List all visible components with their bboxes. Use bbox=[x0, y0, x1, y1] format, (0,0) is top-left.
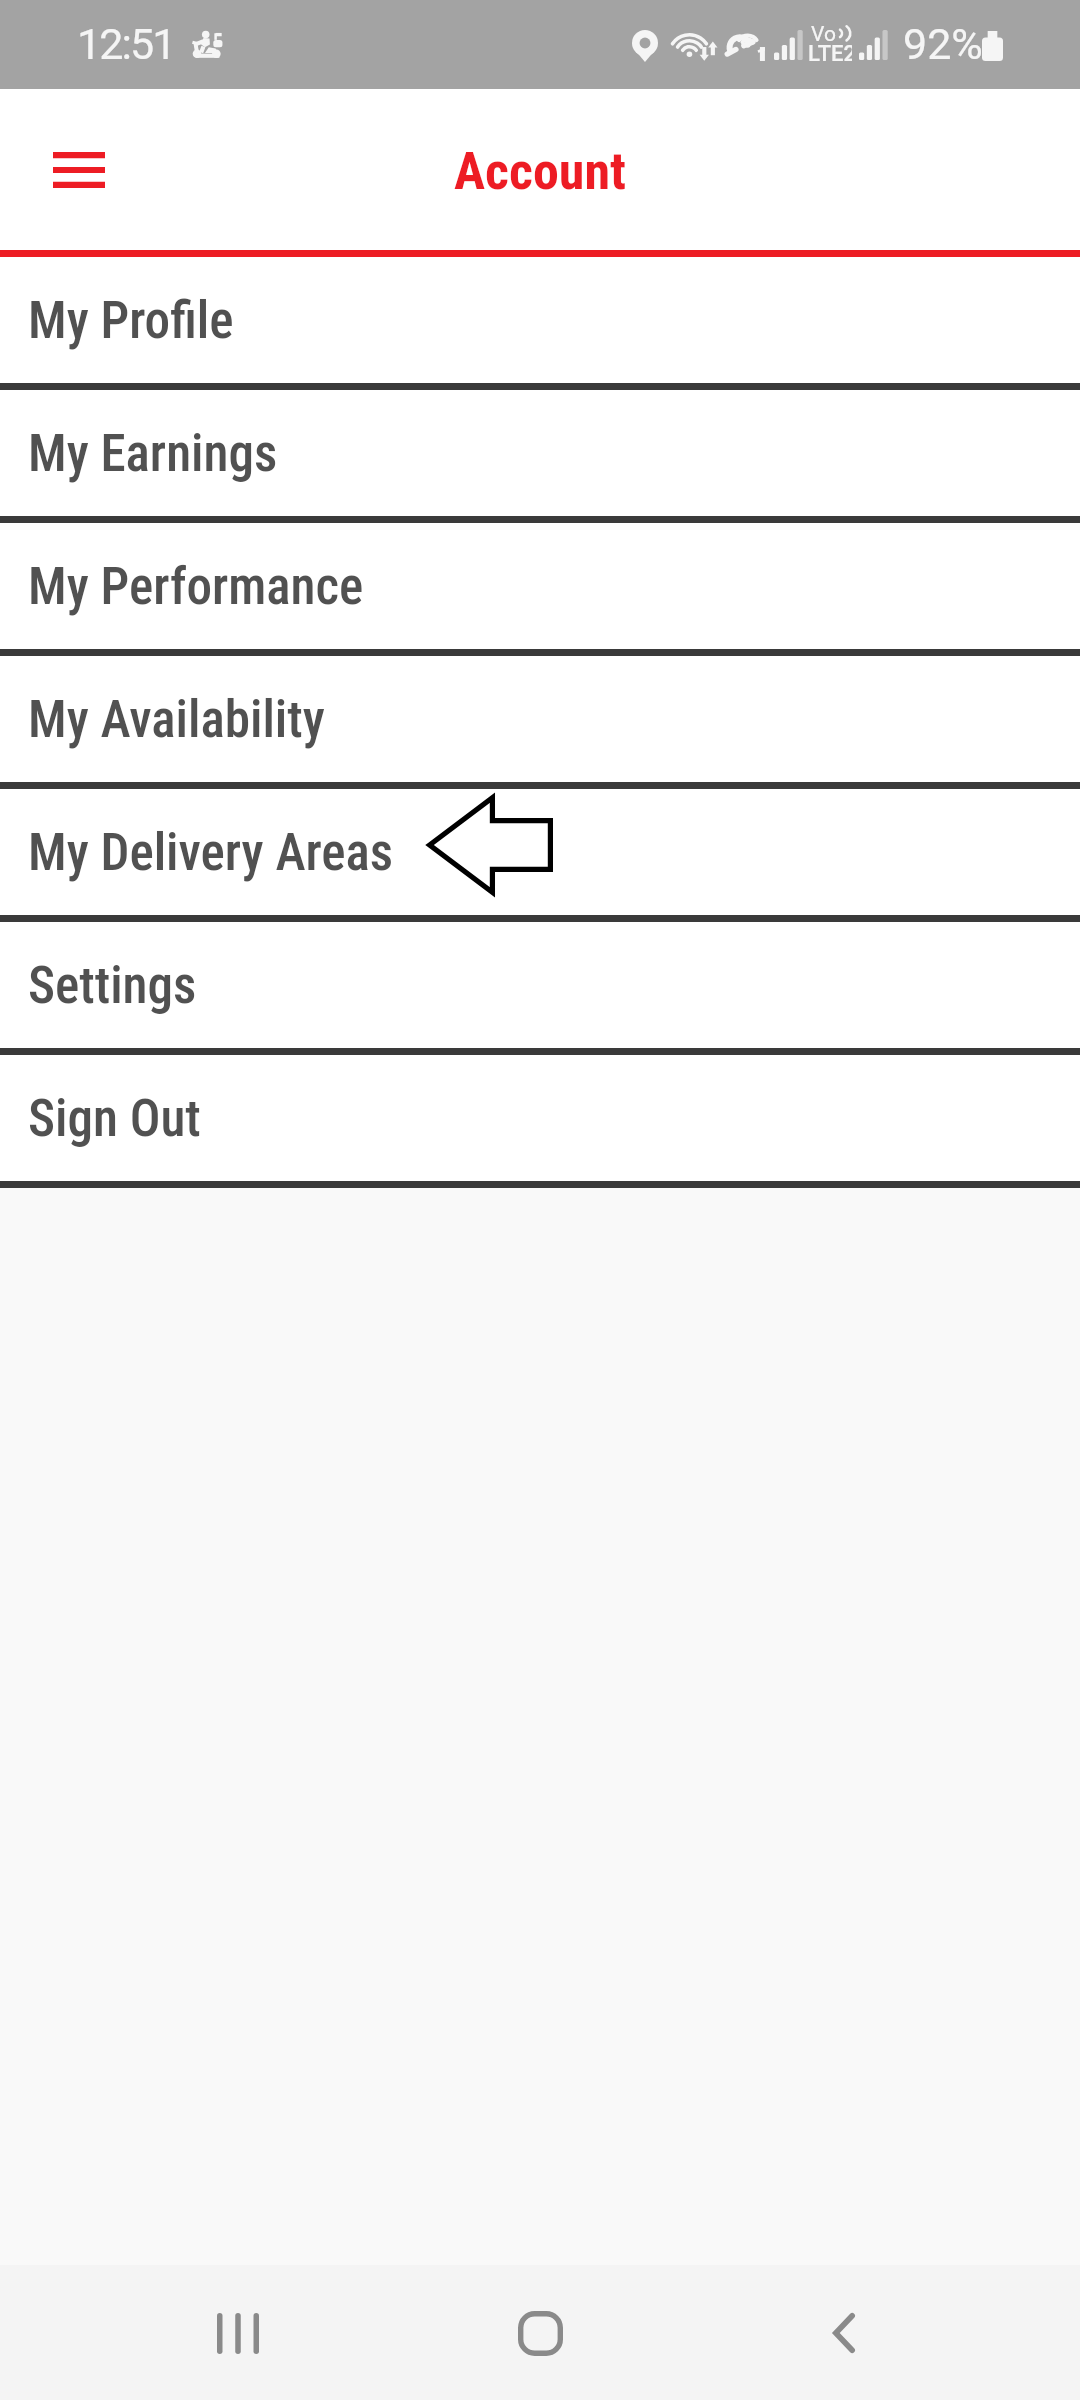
button[interactable]: Settings bbox=[0, 922, 1080, 1048]
staticText: Settings bbox=[28, 956, 197, 1016]
staticText: Account bbox=[454, 141, 626, 202]
button[interactable]: My Profile bbox=[0, 257, 1080, 383]
button[interactable]: Sign Out bbox=[0, 1055, 1080, 1181]
button[interactable]: Home bbox=[485, 2278, 595, 2388]
button[interactable]: Recent apps bbox=[183, 2278, 293, 2388]
staticText: My Performance bbox=[28, 557, 364, 617]
staticText: Vo bbox=[811, 22, 836, 47]
staticText: My Availability bbox=[28, 690, 325, 750]
button[interactable]: My Earnings bbox=[0, 390, 1080, 516]
staticText: 92% bbox=[903, 19, 983, 69]
button[interactable]: Menu bbox=[29, 120, 129, 220]
staticText: Sign Out bbox=[28, 1089, 201, 1149]
staticText: My Profile bbox=[28, 291, 234, 351]
button[interactable]: My Performance bbox=[0, 523, 1080, 649]
button[interactable]: Back bbox=[787, 2278, 897, 2388]
staticText: 12:51 bbox=[77, 19, 175, 69]
button[interactable]: My Availability bbox=[0, 656, 1080, 782]
staticText: LTE2 bbox=[808, 41, 852, 67]
staticText: My Earnings bbox=[28, 424, 278, 484]
button[interactable]: My Delivery Areas bbox=[0, 789, 1080, 915]
staticText: My Delivery Areas bbox=[28, 823, 394, 883]
